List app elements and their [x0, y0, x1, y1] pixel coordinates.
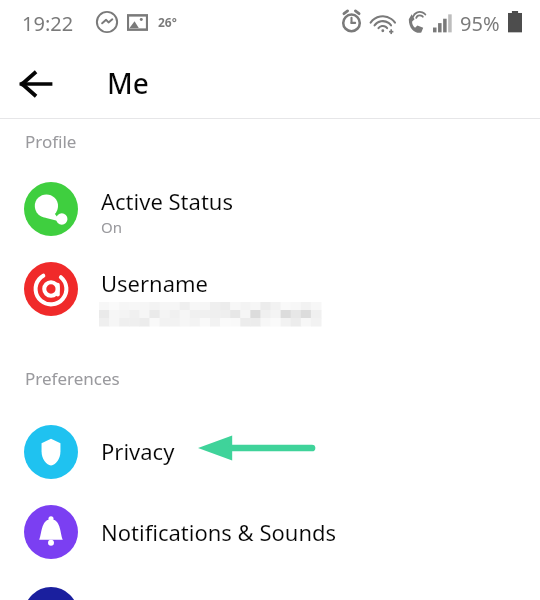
button[interactable]: Username: [0, 255, 540, 331]
staticText: Privacy: [101, 436, 175, 466]
staticText: 26°: [158, 14, 177, 30]
staticText: 19:22: [22, 10, 74, 37]
button[interactable]: Notifications & Sounds: [0, 495, 540, 573]
staticText: On: [101, 217, 122, 237]
staticText: Active Status: [101, 186, 233, 216]
staticText: Preferences: [25, 367, 120, 390]
staticText: Profile: [25, 130, 77, 153]
button[interactable]: Back: [14, 62, 58, 106]
staticText: 95%: [460, 10, 500, 37]
button[interactable]: More settings: [24, 587, 78, 600]
button[interactable]: Privacy: [0, 414, 540, 490]
staticText: Username: [101, 268, 209, 298]
staticText: Notifications & Sounds: [101, 517, 337, 547]
button[interactable]: Active Status: [0, 172, 540, 246]
staticText: Me: [107, 64, 149, 102]
